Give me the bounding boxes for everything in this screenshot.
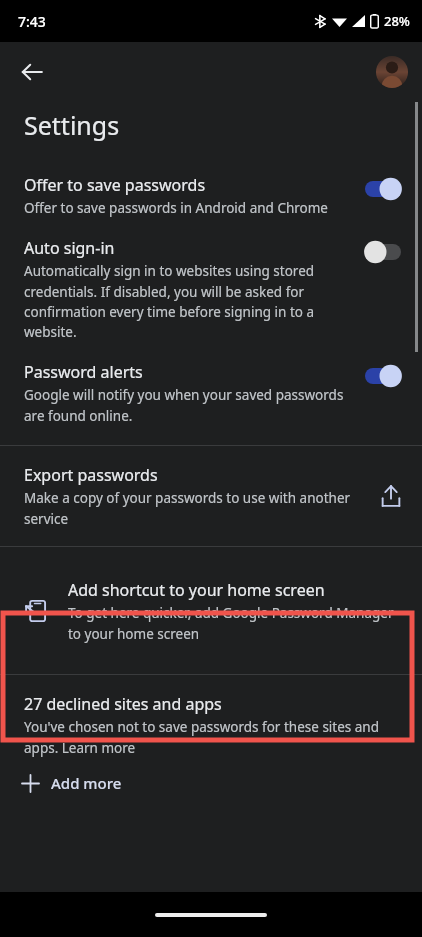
- staticText: Make a copy of your passwords to use wit…: [24, 489, 368, 528]
- button[interactable]: Export passwords: [0, 446, 422, 546]
- staticText: Add shortcut to your home screen: [68, 579, 325, 601]
- staticText: Google will notify you when your saved p…: [24, 386, 350, 425]
- button[interactable]: Back: [10, 50, 54, 94]
- button[interactable]: Account: [376, 56, 408, 88]
- staticText: 27 declined sites and apps: [24, 693, 222, 715]
- staticText: Password alerts: [24, 361, 143, 383]
- staticText: Add more: [51, 773, 122, 793]
- button[interactable]: Password alerts: [0, 351, 422, 435]
- staticText: Settings: [24, 108, 120, 142]
- button[interactable]: 27 declined sites and apps: [0, 675, 422, 763]
- staticText: You've chosen not to save passwords for …: [24, 718, 404, 757]
- staticText: Offer to save passwords in Android and C…: [24, 199, 328, 217]
- button[interactable]: Add more: [0, 763, 140, 803]
- staticText: Automatically sign in to websites using …: [24, 262, 350, 341]
- staticText: Export passwords: [24, 464, 158, 486]
- staticText: To get here quicker, add Google Password…: [68, 604, 404, 643]
- staticText: Auto sign-in: [24, 237, 115, 259]
- staticText: 7:43: [18, 12, 46, 31]
- button[interactable]: Offer to save passwords: [0, 164, 422, 227]
- staticText: 28%: [384, 12, 410, 30]
- staticText: Offer to save passwords: [24, 174, 206, 196]
- button[interactable]: Auto sign-in: [0, 227, 422, 351]
- button[interactable]: Offer to save passwords: [362, 176, 404, 202]
- button[interactable]: Auto sign-in: [362, 239, 404, 265]
- button[interactable]: Password alerts: [362, 363, 404, 389]
- button[interactable]: Add shortcut to your home screen: [0, 547, 422, 674]
